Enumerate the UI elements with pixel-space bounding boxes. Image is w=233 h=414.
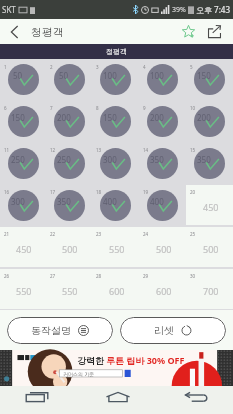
staticText: 150 (103, 112, 117, 123)
staticText: 8 (96, 105, 99, 111)
staticText: 250 (11, 154, 25, 165)
staticText: 700 (203, 285, 219, 297)
staticText: 1 (4, 64, 7, 70)
staticText: 50 (13, 70, 23, 81)
staticText: 100 (103, 70, 117, 81)
button[interactable]: Home (98, 386, 138, 406)
button[interactable]: 6 (0, 100, 46, 142)
button[interactable]: 14 (139, 142, 186, 184)
staticText: 오후 7:43 (196, 4, 230, 15)
button[interactable]: 23 (92, 226, 139, 268)
staticText: 550 (62, 285, 78, 297)
staticText: 강력한 (77, 355, 104, 366)
button[interactable]: 2 (46, 59, 92, 100)
staticText: 100 (150, 70, 164, 81)
staticText: 11 (4, 147, 10, 153)
button[interactable]: 9 (139, 100, 186, 142)
staticText: 26 (4, 273, 10, 279)
staticText: 400 (103, 196, 117, 207)
staticText: 350 (197, 154, 211, 165)
button[interactable]: 28 (92, 268, 139, 310)
staticText: 28 (96, 273, 102, 279)
button[interactable]: 16 (0, 184, 46, 226)
staticText: 12 (50, 147, 56, 153)
button[interactable]: 27 (46, 268, 92, 310)
button[interactable]: 동작설명 (7, 317, 113, 344)
button[interactable]: Back (177, 386, 217, 406)
button[interactable]: Advertisement (0, 350, 233, 386)
staticText: 23 (96, 231, 102, 237)
button[interactable]: 19 (139, 184, 186, 226)
button[interactable]: 리셋 (120, 317, 226, 344)
button[interactable]: Share (201, 19, 227, 44)
staticText: 21 (4, 231, 10, 237)
staticText: 39% (172, 5, 186, 15)
staticText: 550 (16, 285, 32, 297)
staticText: 9 (143, 105, 146, 111)
staticText: 600 (109, 285, 125, 297)
button[interactable]: 11 (0, 142, 46, 184)
staticText: SKT (2, 4, 16, 15)
staticText: 16 (4, 189, 10, 195)
button[interactable]: 4 (139, 59, 186, 100)
staticText: 450 (203, 201, 219, 213)
button[interactable]: 1 (0, 59, 46, 100)
staticText: 22 (50, 231, 56, 237)
staticText: 7 (50, 105, 53, 111)
staticText: 청평객 (31, 25, 64, 39)
staticText: 550 (109, 243, 125, 255)
staticText: 6 (4, 105, 7, 111)
staticText: 15 (190, 147, 196, 153)
staticText: 3 (96, 64, 99, 70)
button[interactable]: 29 (139, 268, 186, 310)
button[interactable]: 18 (92, 184, 139, 226)
staticText: 600 (156, 285, 172, 297)
button[interactable]: 26 (0, 268, 46, 310)
staticText: 200 (57, 112, 71, 123)
staticText: 300 (103, 154, 117, 165)
staticText: 27 (50, 273, 56, 279)
staticText: 10 (190, 105, 196, 111)
button[interactable]: Recents (17, 386, 57, 406)
staticText: 400 (150, 196, 164, 207)
staticText: 13 (96, 147, 102, 153)
staticText: 19 (143, 189, 149, 195)
staticText: 청평객 (106, 47, 127, 56)
staticText: 커머스의 기준 (63, 371, 95, 378)
button[interactable]: 25 (186, 226, 233, 268)
staticText: 450 (16, 243, 32, 255)
button[interactable]: 30 (186, 268, 233, 310)
staticText: 500 (156, 243, 172, 255)
staticText: 250 (57, 154, 71, 165)
button[interactable]: 13 (92, 142, 139, 184)
button[interactable]: Back (0, 19, 28, 44)
staticText: 5 (190, 64, 193, 70)
button[interactable]: 21 (0, 226, 46, 268)
button[interactable]: 22 (46, 226, 92, 268)
staticText: 4 (143, 64, 146, 70)
button[interactable]: 24 (139, 226, 186, 268)
staticText: 25 (190, 231, 196, 237)
button[interactable]: 12 (46, 142, 92, 184)
button[interactable]: Favorite (175, 19, 201, 44)
staticText: 150 (197, 70, 211, 81)
button[interactable]: 5 (186, 59, 233, 100)
button[interactable]: 3 (92, 59, 139, 100)
staticText: 500 (203, 243, 219, 255)
staticText: 24 (143, 231, 149, 237)
button[interactable]: 15 (186, 142, 233, 184)
staticText: 200 (197, 112, 211, 123)
staticText: 14 (143, 147, 149, 153)
button[interactable]: 7 (46, 100, 92, 142)
button[interactable]: 10 (186, 100, 233, 142)
staticText: 300 (11, 196, 25, 207)
button[interactable]: 20 (186, 184, 233, 226)
staticText: 18 (96, 189, 102, 195)
button[interactable]: 17 (46, 184, 92, 226)
staticText: 500 (62, 243, 78, 255)
button[interactable]: 8 (92, 100, 139, 142)
staticText: 350 (150, 154, 164, 165)
staticText: 동작설명 (31, 324, 71, 337)
staticText: 2 (50, 64, 53, 70)
staticText: 29 (143, 273, 149, 279)
